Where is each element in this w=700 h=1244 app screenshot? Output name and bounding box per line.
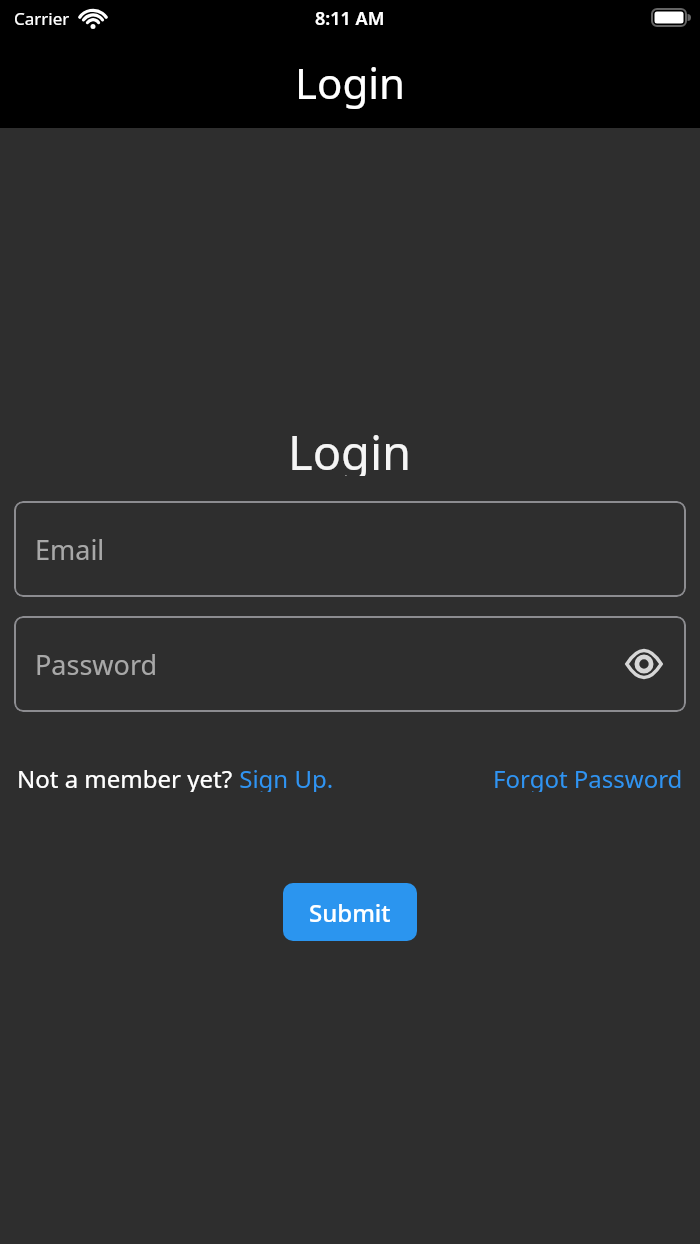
button[interactable] bbox=[624, 644, 664, 684]
staticText: Login bbox=[295, 54, 406, 111]
staticText: Forgot Password bbox=[493, 762, 683, 792]
staticText: Submit bbox=[309, 896, 391, 929]
button[interactable]: Sign Up. bbox=[233, 762, 334, 792]
staticText: Not a member yet? bbox=[17, 762, 233, 792]
button[interactable]: Submit bbox=[283, 883, 417, 941]
button[interactable]: Email bbox=[14, 501, 686, 597]
button[interactable]: Password bbox=[14, 616, 686, 712]
staticText: Login bbox=[288, 420, 412, 476]
staticText: Email bbox=[35, 531, 105, 568]
staticText: 8:11 AM bbox=[315, 6, 385, 31]
button[interactable]: Forgot Password bbox=[493, 762, 683, 792]
staticText: Password bbox=[35, 646, 158, 683]
staticText: Carrier bbox=[14, 7, 70, 30]
